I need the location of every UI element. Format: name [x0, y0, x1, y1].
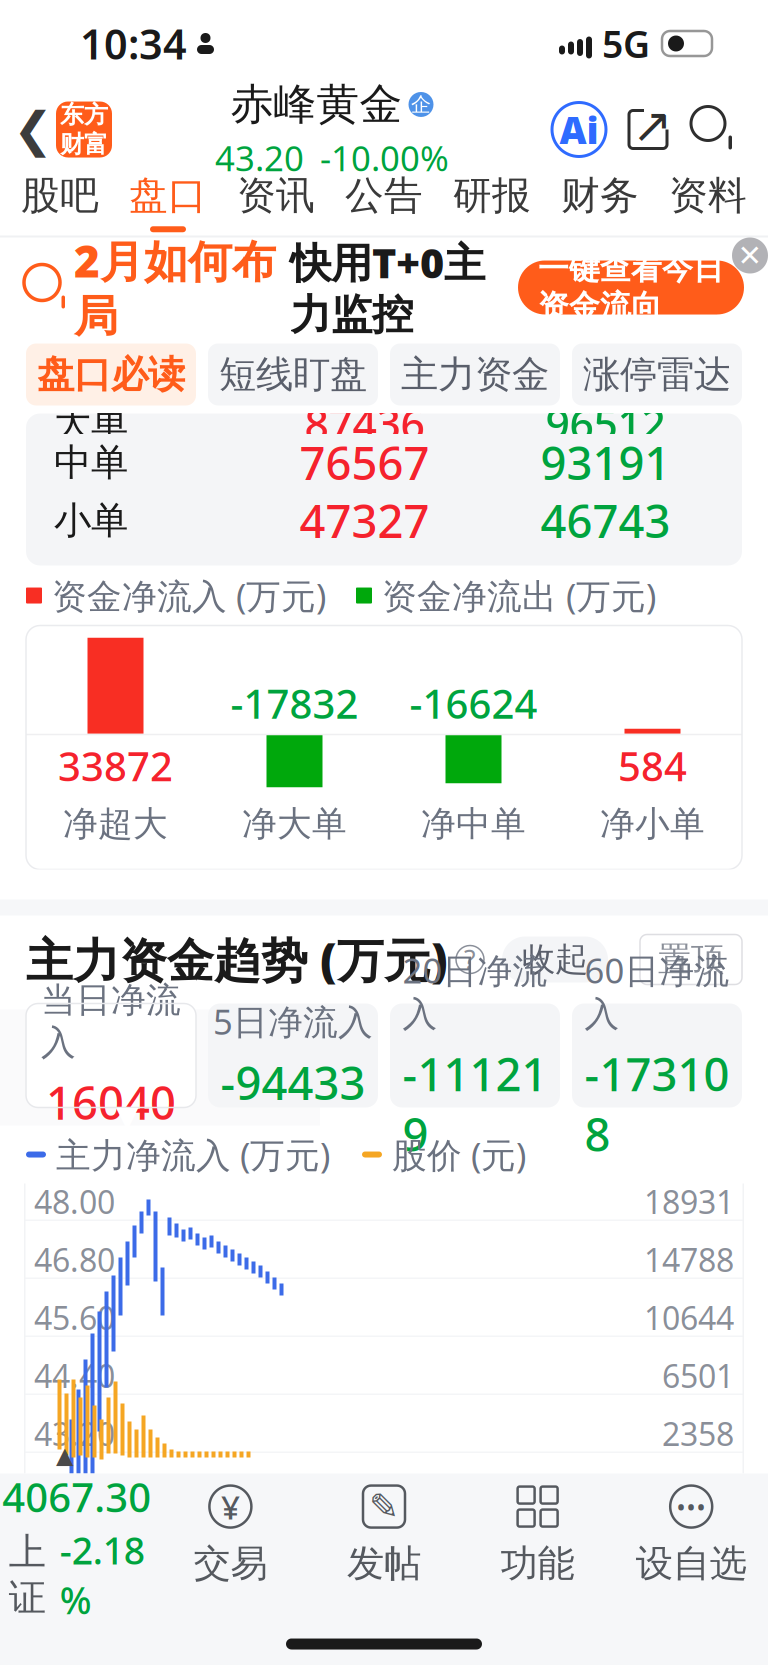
staticText: 43.20: [215, 135, 304, 181]
staticText: 14788: [644, 1238, 734, 1281]
staticText: 18931: [644, 1180, 734, 1223]
button[interactable]: 20日净流入: [390, 1003, 560, 1107]
button[interactable]: 股吧: [6, 167, 114, 235]
button[interactable]: 5日净流入: [208, 1003, 378, 1107]
staticText: ✎: [369, 1486, 399, 1527]
staticText: 上证: [9, 1529, 46, 1621]
staticText: 收起: [522, 939, 588, 980]
staticText: ✕: [737, 239, 762, 272]
staticText: ▲: [56, 1442, 73, 1468]
staticText: ↗: [632, 98, 672, 153]
staticText: 置顶: [658, 939, 724, 980]
button[interactable]: ✎: [307, 1481, 461, 1586]
button[interactable]: 功能: [461, 1481, 614, 1586]
staticText: -2.18%: [60, 1525, 145, 1624]
staticText: 当日净流入: [41, 979, 181, 1064]
staticText: 20日净流入: [402, 947, 547, 1036]
staticText: 企: [411, 92, 431, 117]
staticText: Ai: [559, 105, 598, 154]
staticText: 10644: [644, 1296, 734, 1339]
button[interactable]: 资讯: [222, 167, 330, 235]
staticText: 584: [618, 739, 687, 792]
button[interactable]: Search: [686, 101, 742, 157]
button[interactable]: 收起: [502, 936, 608, 982]
staticText: 中单: [54, 440, 128, 485]
staticText: 交易: [193, 1541, 267, 1586]
staticText: 研报: [453, 172, 531, 219]
staticText: -94433: [220, 1052, 365, 1113]
staticText: 一键查看今日资金流向: [538, 250, 724, 325]
staticText: ▼: [116, 1100, 139, 1133]
button[interactable]: 研报: [438, 167, 546, 235]
button[interactable]: 短线盯盘: [208, 343, 378, 405]
button[interactable]: 60日净流入: [572, 1003, 742, 1107]
staticText: 财富: [60, 129, 108, 159]
staticText: -111219: [402, 1044, 547, 1164]
staticText: 主力资金: [401, 352, 549, 397]
button[interactable]: Share: [620, 101, 676, 157]
staticText: 6501: [662, 1354, 734, 1397]
staticText: 60日净流入: [584, 947, 729, 1036]
staticText: 5日净流入: [213, 998, 373, 1044]
staticText: 赤峰黄金: [230, 78, 402, 131]
staticText: 主力资金趋势 (万元): [26, 928, 448, 990]
staticText: -16624: [409, 677, 537, 730]
button[interactable]: AI 助手: [552, 102, 606, 156]
staticText: 87436: [304, 395, 424, 452]
staticText: 主力净流入 (万元): [56, 1131, 330, 1177]
staticText: 4067.30: [2, 1470, 151, 1523]
staticText: 净超大: [63, 803, 168, 845]
staticText: 股吧: [21, 172, 99, 219]
staticText: 盘口必读: [37, 352, 185, 397]
staticText: 资讯: [237, 172, 315, 219]
staticText: -173108: [584, 1044, 729, 1164]
button[interactable]: 东方财富首页: [56, 101, 112, 157]
button[interactable]: ▲: [0, 1442, 154, 1624]
staticText: 东方: [60, 100, 108, 129]
staticText: 5G: [602, 19, 650, 68]
staticText: 资料: [669, 172, 747, 219]
button[interactable]: 盘口: [114, 167, 222, 235]
staticText: -10.00%: [320, 135, 449, 181]
button[interactable]: 说明: [456, 945, 484, 973]
button[interactable]: •••: [614, 1481, 768, 1586]
staticText: 10:34: [80, 16, 187, 71]
button[interactable]: 财务: [546, 167, 654, 235]
button[interactable]: ¥: [154, 1481, 307, 1586]
staticText: 46.80: [34, 1238, 115, 1281]
button[interactable]: 置顶: [640, 934, 742, 984]
staticText: 净中单: [421, 803, 526, 845]
staticText: 财务: [561, 172, 639, 219]
button[interactable]: Close: [732, 237, 768, 273]
staticText: 短线盯盘: [219, 352, 367, 397]
button[interactable]: 盘口必读: [26, 343, 196, 405]
staticText: 净小单: [600, 803, 705, 845]
button[interactable]: 一键查看今日资金流向: [518, 260, 744, 314]
staticText: 93191: [540, 432, 670, 493]
staticText: ❮: [13, 102, 53, 157]
staticText: 快用T+0主力监控: [290, 235, 485, 340]
button[interactable]: 公告: [330, 167, 438, 235]
button[interactable]: Back: [10, 94, 56, 164]
button[interactable]: 主力资金: [390, 343, 560, 405]
staticText: 43.20: [34, 1412, 115, 1455]
staticText: 2358: [662, 1412, 734, 1455]
staticText: -17832: [230, 677, 358, 730]
staticText: 资金净流入 (万元): [52, 572, 326, 618]
staticText: 48.00: [34, 1180, 115, 1223]
staticText: 盘口: [129, 172, 207, 219]
staticText: 47327: [299, 490, 429, 551]
staticText: 涨停雷达: [583, 352, 731, 397]
staticText: 45.60: [34, 1296, 115, 1339]
staticText: 33872: [58, 739, 173, 792]
staticText: 44.40: [34, 1354, 115, 1397]
staticText: 公告: [345, 172, 423, 219]
staticText: 46743: [540, 490, 670, 551]
staticText: •••: [676, 1490, 706, 1523]
staticText: ¥: [221, 1484, 240, 1529]
button[interactable]: 资料: [654, 167, 762, 235]
staticText: 76567: [299, 432, 429, 493]
button[interactable]: 当日净流入: [26, 1003, 196, 1107]
button[interactable]: 涨停雷达: [572, 343, 742, 405]
staticText: 大单: [54, 401, 128, 446]
